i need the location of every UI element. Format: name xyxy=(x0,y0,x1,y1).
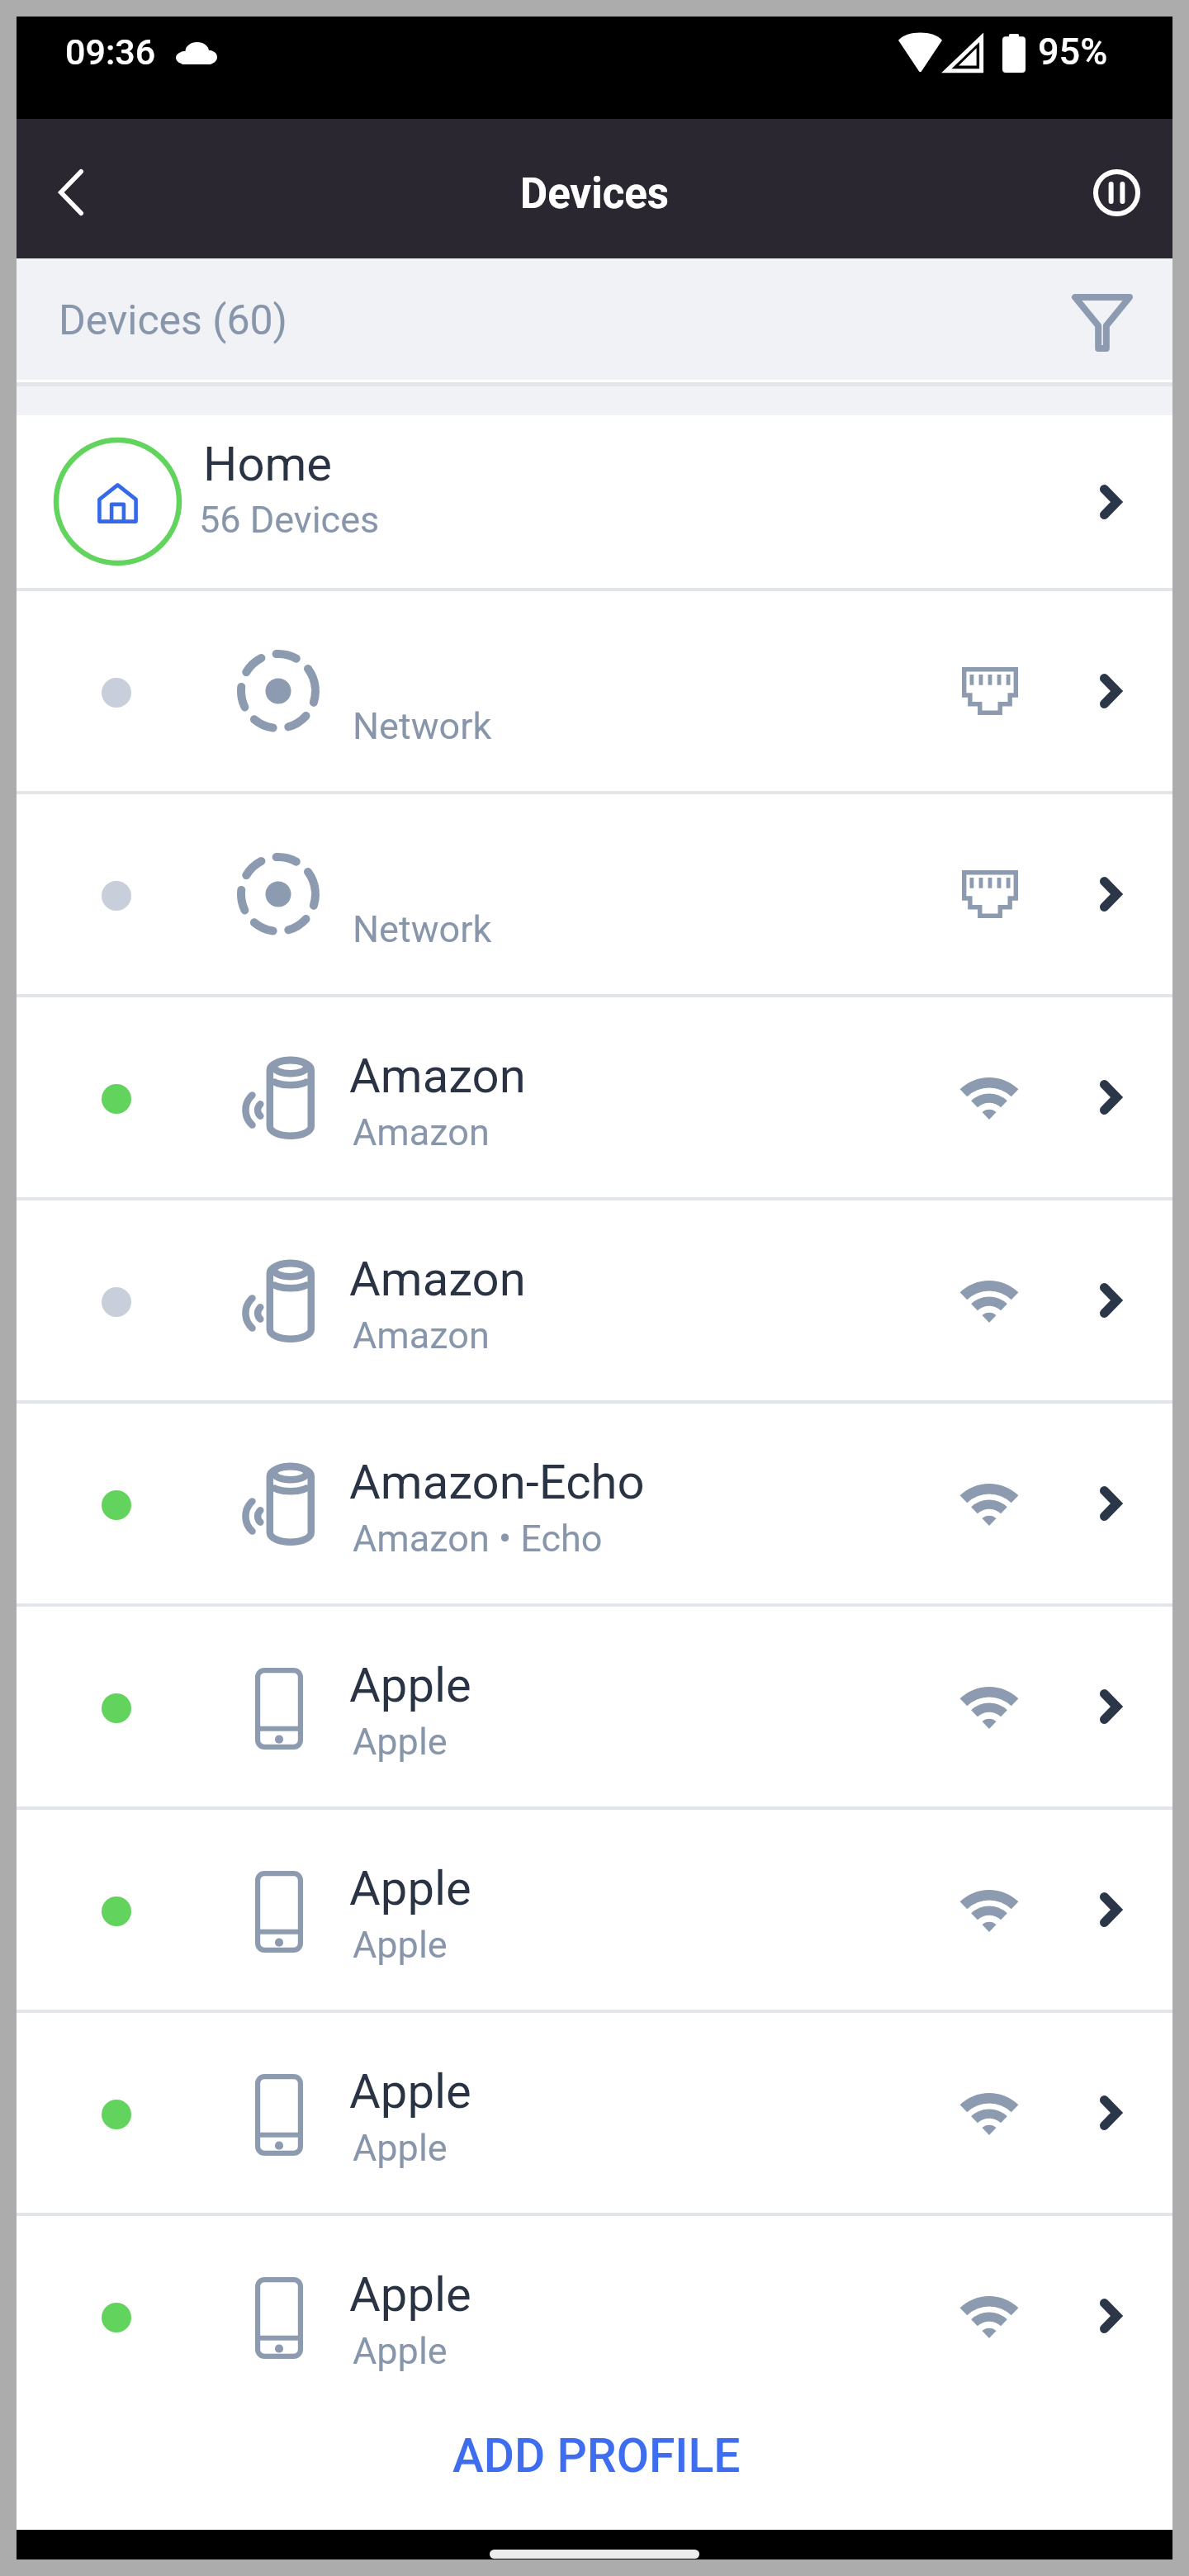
button[interactable]: Back xyxy=(31,153,111,232)
staticText: Devices (60) xyxy=(59,296,288,345)
staticText: Network xyxy=(353,704,492,748)
staticText: Apple xyxy=(353,1923,448,1967)
button[interactable]: Apple xyxy=(17,1810,1172,2010)
staticText: Apple xyxy=(353,2126,448,2170)
staticText: Apple xyxy=(349,1860,471,1916)
staticText: Amazon xyxy=(349,1251,526,1307)
button[interactable]: Apple xyxy=(17,2216,1172,2416)
staticText: Amazon • Echo xyxy=(353,1517,603,1560)
staticText: Amazon xyxy=(349,1048,526,1104)
staticText: Apple xyxy=(349,2266,471,2323)
staticText: Apple xyxy=(353,2329,448,2373)
staticText: Network xyxy=(353,907,492,951)
staticText: Home xyxy=(203,436,333,492)
button[interactable]: Network xyxy=(17,794,1172,994)
button[interactable]: Filter xyxy=(1063,283,1142,362)
staticText: Apple xyxy=(349,2063,471,2119)
button[interactable]: Apple xyxy=(17,2013,1172,2213)
button[interactable]: ADD PROFILE xyxy=(17,2416,1172,2526)
staticText: Apple xyxy=(349,1657,471,1713)
staticText: 56 Devices xyxy=(199,498,380,542)
staticText: Apple xyxy=(353,1720,448,1764)
button[interactable]: Amazon-Echo xyxy=(17,1404,1172,1603)
button[interactable]: Network xyxy=(17,591,1172,791)
staticText: Amazon xyxy=(353,1314,490,1357)
button[interactable]: Pause xyxy=(1080,156,1153,229)
staticText: 95% xyxy=(1038,30,1108,73)
button[interactable]: Amazon xyxy=(17,997,1172,1197)
staticText: Amazon-Echo xyxy=(349,1454,645,1510)
button[interactable]: Amazon xyxy=(17,1200,1172,1400)
staticText: Devices xyxy=(520,169,669,219)
staticText: Amazon xyxy=(353,1110,490,1154)
staticText: ADD PROFILE xyxy=(452,2428,741,2484)
staticText: 09:36 xyxy=(65,31,156,73)
button[interactable]: Apple xyxy=(17,1607,1172,1807)
button[interactable]: Home xyxy=(17,415,1172,588)
